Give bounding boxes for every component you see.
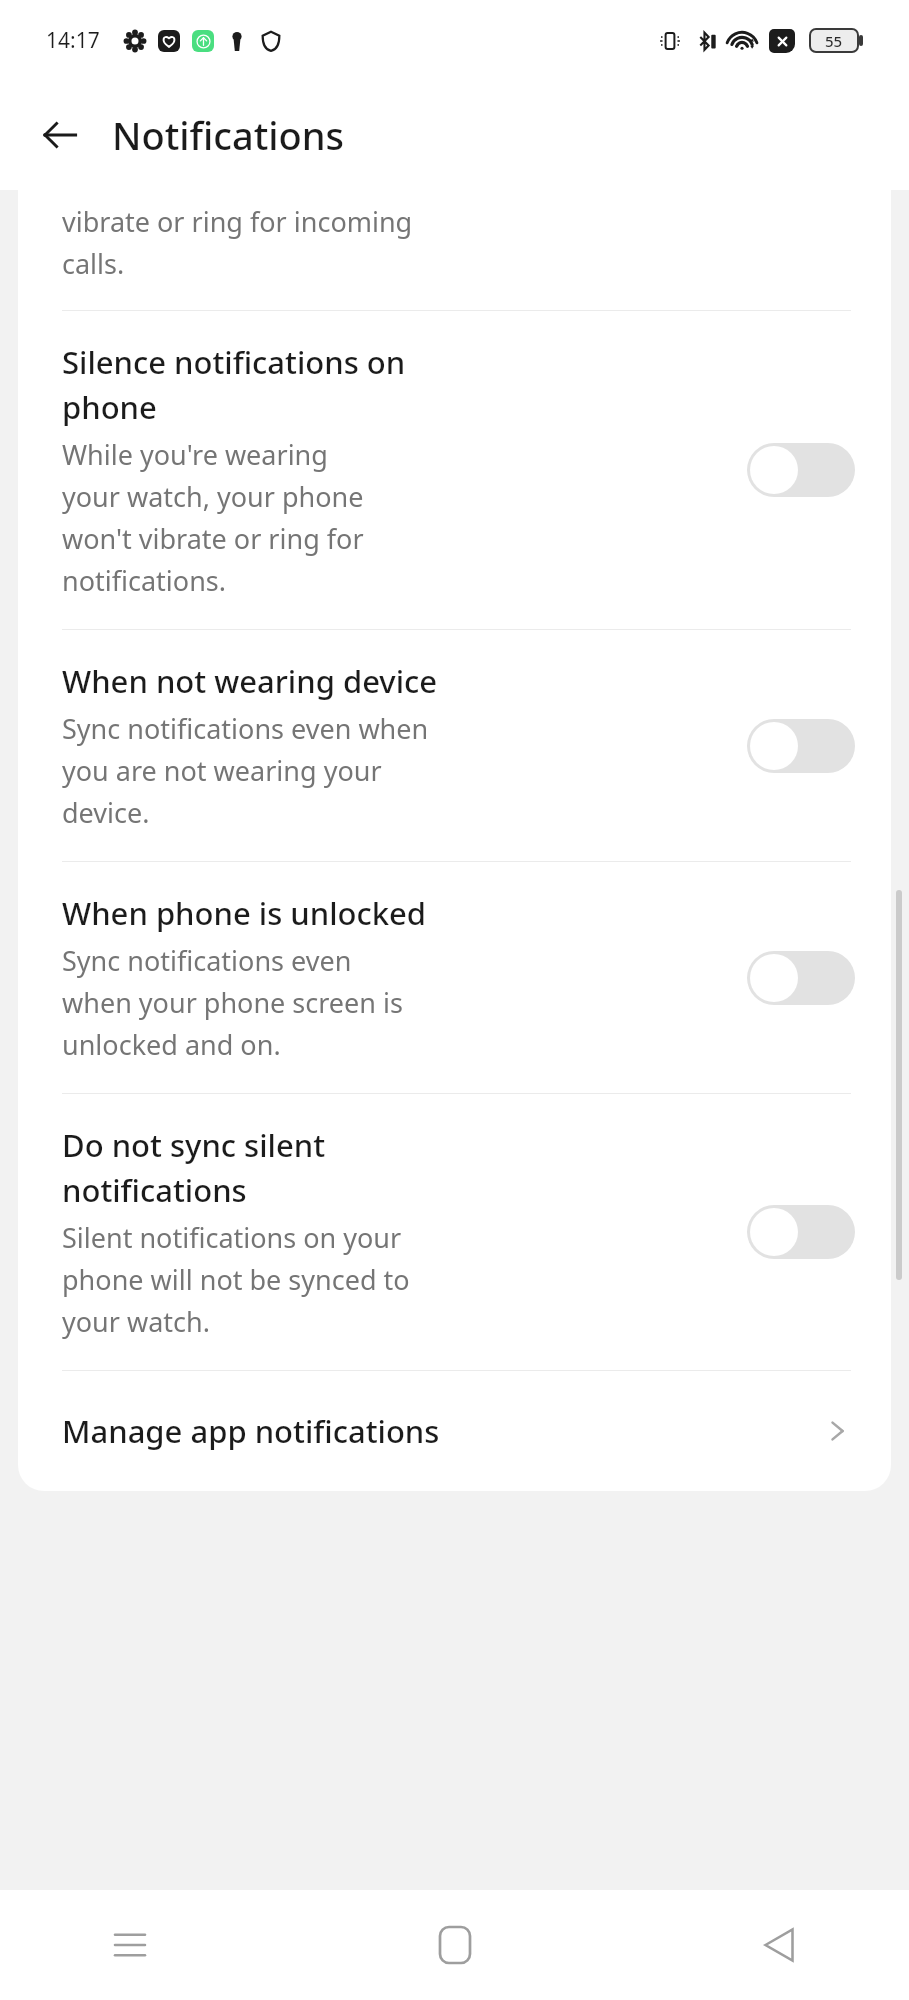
staticText: 14:17 bbox=[46, 26, 100, 55]
staticText: Manage app notifications bbox=[62, 1410, 823, 1452]
button[interactable]: Toggle bbox=[747, 719, 855, 773]
button[interactable]: Home bbox=[415, 1905, 495, 1985]
staticText: vibrate or ring for incoming calls. bbox=[62, 203, 413, 282]
button[interactable]: Toggle bbox=[747, 1205, 855, 1259]
staticText: Do not sync silent notifications bbox=[62, 1124, 326, 1211]
button[interactable]: Back bbox=[30, 105, 90, 165]
button[interactable]: Toggle bbox=[747, 443, 855, 497]
staticText: When phone is unlocked bbox=[62, 892, 427, 934]
button[interactable]: Recents bbox=[90, 1905, 170, 1985]
button[interactable]: Manage app notifications bbox=[18, 1371, 891, 1491]
staticText: While you're wearing your watch, your ph… bbox=[62, 436, 364, 599]
staticText: Notifications bbox=[112, 109, 345, 161]
button[interactable]: Do not sync silent notifications bbox=[18, 1094, 891, 1370]
button[interactable]: Silence notifications on phone bbox=[18, 311, 891, 629]
staticText: Sync notifications even when your phone … bbox=[62, 942, 403, 1063]
button[interactable]: Back bbox=[739, 1905, 819, 1985]
staticText: Silence notifications on phone bbox=[62, 341, 406, 428]
staticText: 55 bbox=[825, 31, 843, 51]
button[interactable]: When phone is unlocked bbox=[18, 862, 891, 1093]
staticText: Silent notifications on your phone will … bbox=[62, 1219, 410, 1340]
staticText: Sync notifications even when you are not… bbox=[62, 710, 429, 831]
button[interactable]: Toggle bbox=[747, 951, 855, 1005]
button[interactable]: When not wearing device bbox=[18, 630, 891, 861]
staticText: When not wearing device bbox=[62, 660, 438, 702]
